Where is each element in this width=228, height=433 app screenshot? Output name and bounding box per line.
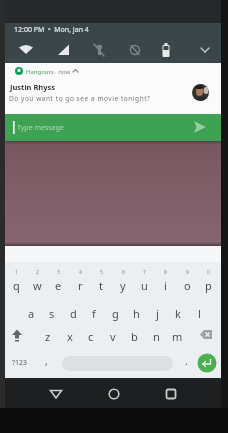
button[interactable]: r bbox=[70, 276, 90, 294]
staticText: Justin Rhyss bbox=[10, 82, 56, 92]
button[interactable]: ?123 bbox=[10, 354, 30, 372]
staticText: l bbox=[198, 306, 201, 321]
button[interactable]: f bbox=[84, 304, 104, 322]
staticText: 6 bbox=[122, 269, 125, 276]
staticText: 2 bbox=[36, 269, 39, 276]
button[interactable] bbox=[161, 384, 181, 404]
staticText: s bbox=[49, 306, 55, 321]
button[interactable]: 9 bbox=[177, 267, 197, 277]
button[interactable]: u bbox=[134, 276, 154, 294]
button[interactable]: t bbox=[91, 276, 111, 294]
staticText: 0 bbox=[207, 269, 210, 276]
button[interactable]: 2 bbox=[27, 267, 47, 277]
staticText: · now bbox=[55, 68, 71, 76]
staticText: x bbox=[67, 329, 73, 344]
button[interactable]: i bbox=[155, 276, 175, 294]
button[interactable] bbox=[197, 353, 217, 373]
button[interactable]: , bbox=[36, 352, 56, 370]
staticText: r bbox=[78, 278, 83, 293]
button[interactable]: 8 bbox=[155, 267, 175, 277]
staticText: t bbox=[99, 278, 103, 293]
staticText: h bbox=[133, 306, 140, 321]
staticText: j bbox=[156, 306, 159, 321]
button[interactable]: z bbox=[38, 327, 58, 345]
button[interactable]: j bbox=[147, 304, 167, 322]
button[interactable]: . bbox=[176, 352, 196, 370]
staticText: 4 bbox=[79, 269, 82, 276]
button[interactable]: h bbox=[126, 304, 146, 322]
staticText: 9 bbox=[186, 269, 189, 276]
staticText: k bbox=[175, 306, 181, 321]
button[interactable] bbox=[156, 40, 176, 60]
button[interactable]: 6 bbox=[113, 267, 133, 277]
staticText: c bbox=[88, 329, 94, 344]
staticText: u bbox=[141, 278, 148, 293]
staticText: q bbox=[13, 278, 20, 293]
button[interactable] bbox=[16, 40, 36, 60]
staticText: 7 bbox=[143, 269, 146, 276]
button[interactable] bbox=[195, 40, 215, 60]
button[interactable]: n bbox=[146, 327, 166, 345]
button[interactable] bbox=[46, 384, 66, 404]
staticText: ?123 bbox=[12, 358, 28, 368]
button[interactable] bbox=[90, 40, 110, 60]
button[interactable]: v bbox=[103, 327, 123, 345]
button[interactable] bbox=[53, 40, 73, 60]
staticText: 12:00 PM • Mon, Jan 4 bbox=[14, 25, 89, 35]
staticText: a bbox=[28, 306, 35, 321]
button[interactable]: o bbox=[177, 276, 197, 294]
staticText: p bbox=[205, 278, 212, 293]
staticText: b bbox=[131, 329, 138, 344]
staticText: o bbox=[184, 278, 191, 293]
staticText: e bbox=[55, 278, 62, 293]
button[interactable] bbox=[189, 116, 213, 139]
staticText: 3 bbox=[57, 269, 60, 276]
button[interactable] bbox=[7, 326, 27, 345]
button[interactable]: 1 bbox=[6, 267, 26, 277]
button[interactable]: 0 bbox=[198, 267, 218, 277]
staticText: z bbox=[45, 329, 51, 344]
button[interactable]: 4 bbox=[70, 267, 90, 277]
staticText: Type message bbox=[17, 123, 64, 133]
button[interactable]: e bbox=[48, 276, 68, 294]
button[interactable]: a bbox=[21, 304, 41, 322]
staticText: Do you want to go see a movie tonight? bbox=[9, 94, 151, 103]
staticText: y bbox=[120, 278, 126, 293]
staticText: f bbox=[92, 306, 96, 321]
staticText: w bbox=[33, 278, 42, 293]
button[interactable]: y bbox=[113, 276, 133, 294]
button[interactable]: 7 bbox=[134, 267, 154, 277]
button[interactable]: g bbox=[105, 304, 125, 322]
button[interactable] bbox=[196, 326, 216, 345]
button[interactable] bbox=[125, 40, 145, 60]
button[interactable]: d bbox=[63, 304, 83, 322]
button[interactable]: m bbox=[167, 327, 187, 345]
button[interactable]: k bbox=[168, 304, 188, 322]
button[interactable]: q bbox=[6, 276, 26, 294]
button[interactable]: Type message bbox=[5, 114, 221, 141]
staticText: i bbox=[164, 278, 167, 293]
staticText: , bbox=[45, 354, 48, 368]
staticText: 8 bbox=[164, 269, 167, 276]
staticText: m bbox=[172, 329, 183, 344]
staticText: d bbox=[70, 306, 77, 321]
button[interactable]: 5 bbox=[91, 267, 111, 277]
button[interactable]: s bbox=[42, 304, 62, 322]
staticText: Hangouts bbox=[26, 68, 54, 76]
staticText: v bbox=[110, 329, 116, 344]
button[interactable]: Hangouts bbox=[5, 63, 221, 114]
staticText: . bbox=[185, 354, 188, 368]
button[interactable] bbox=[104, 384, 124, 404]
button[interactable]: x bbox=[60, 327, 80, 345]
button[interactable]: w bbox=[27, 276, 47, 294]
button[interactable]: 3 bbox=[48, 267, 68, 277]
staticText: n bbox=[153, 329, 160, 344]
staticText: 5 bbox=[100, 269, 103, 276]
button[interactable]: b bbox=[124, 327, 144, 345]
staticText: 1 bbox=[15, 269, 18, 276]
staticText: g bbox=[112, 306, 119, 321]
button[interactable]: c bbox=[81, 327, 101, 345]
button[interactable]: p bbox=[198, 276, 218, 294]
button[interactable]: l bbox=[189, 304, 209, 322]
